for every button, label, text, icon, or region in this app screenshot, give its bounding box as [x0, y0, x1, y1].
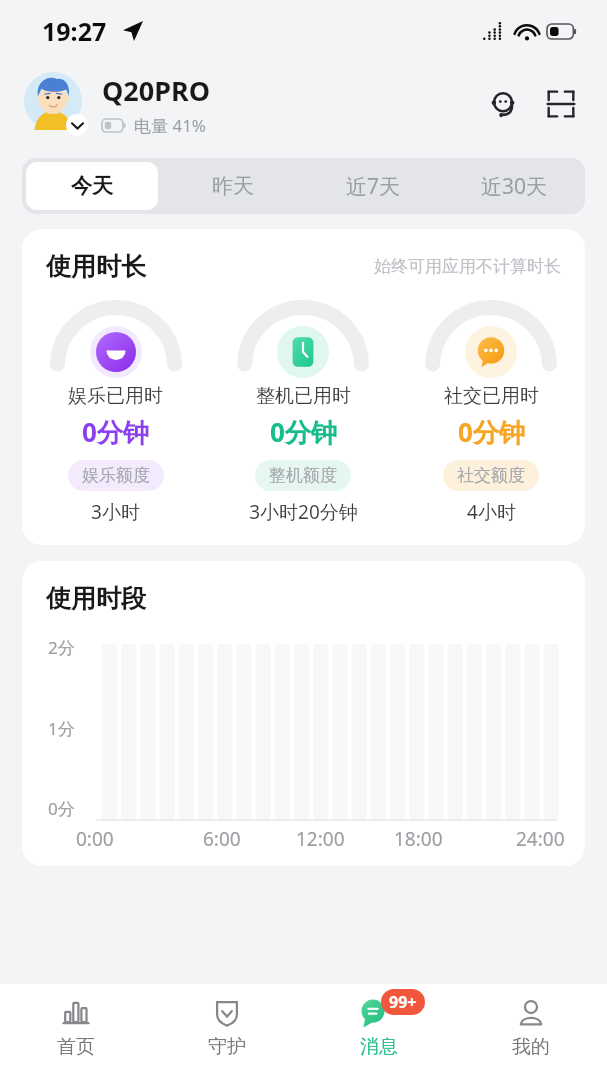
button[interactable]: 我的 [455, 984, 607, 1080]
button[interactable]: 守护 [151, 984, 303, 1080]
button[interactable]: 99+ [303, 984, 455, 1080]
staticText: 整机已用时 [256, 384, 351, 408]
staticText: 24:00 [516, 826, 565, 852]
staticText: 我的 [512, 1035, 550, 1059]
staticText: 社交已用时 [444, 384, 539, 408]
button[interactable]: 首页 [0, 984, 151, 1080]
staticText: 昨天 [212, 173, 254, 199]
staticText: 娱乐额度 [82, 465, 150, 486]
button[interactable]: 整机已用时 [209, 300, 397, 525]
staticText: 12:00 [296, 826, 345, 852]
staticText: 6:00 [203, 826, 241, 852]
staticText: 近30天 [481, 172, 548, 201]
staticText: 消息 [360, 1035, 398, 1059]
staticText: 近7天 [346, 172, 401, 201]
staticText: 1分 [48, 717, 75, 740]
staticText: 使用时段 [46, 583, 146, 614]
button[interactable]: Profile avatar [24, 72, 88, 136]
staticText: Q20PRO [102, 72, 211, 109]
staticText: 4小时 [467, 499, 516, 525]
staticText: 今天 [71, 173, 113, 199]
button[interactable]: Customer service [481, 82, 525, 126]
staticText: 守护 [208, 1035, 246, 1059]
button[interactable]: 近30天 [448, 162, 581, 210]
button[interactable]: 社交已用时 [397, 300, 585, 525]
staticText: 0分钟 [82, 414, 149, 450]
staticText: 始终可用应用不计算时长 [374, 256, 561, 277]
staticText: 使用时长 [46, 251, 146, 282]
staticText: 3小时20分钟 [249, 499, 358, 525]
staticText: 18:00 [394, 826, 443, 852]
staticText: 首页 [57, 1035, 95, 1059]
staticText: 19:27 [42, 14, 107, 48]
staticText: 整机额度 [269, 465, 337, 486]
staticText: 3小时 [91, 499, 140, 525]
staticText: 99+ [389, 991, 417, 1013]
staticText: 娱乐已用时 [68, 384, 163, 408]
staticText: 0分钟 [458, 414, 525, 450]
button[interactable]: 近7天 [307, 162, 440, 210]
button[interactable]: 昨天 [166, 162, 299, 210]
staticText: 社交额度 [457, 465, 525, 486]
staticText: 2分 [48, 636, 75, 659]
button[interactable]: 娱乐已用时 [22, 300, 209, 525]
staticText: 0分钟 [270, 414, 337, 450]
staticText: 0分 [48, 797, 75, 820]
staticText: 电量 41% [134, 114, 206, 137]
button[interactable]: Scan [539, 82, 583, 126]
staticText: 0:00 [76, 826, 114, 852]
button[interactable]: 今天 [26, 162, 158, 210]
